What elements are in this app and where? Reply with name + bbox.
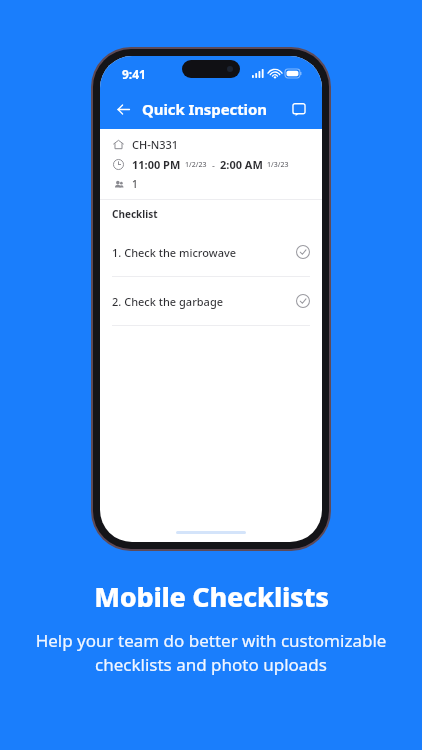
button[interactable]: Back: [110, 96, 136, 122]
staticText: 11:00 PM: [132, 157, 181, 172]
staticText: 1/3/23: [267, 160, 289, 170]
staticText: -: [212, 159, 215, 171]
staticText: 1/2/23: [185, 160, 207, 170]
button[interactable]: 2. Check the garbage: [100, 277, 322, 326]
button[interactable]: 1. Check the microwave: [100, 228, 322, 277]
staticText: Mobile Checklists: [94, 578, 329, 615]
staticText: Help your team do better with customizab…: [26, 629, 396, 676]
staticText: 1: [132, 177, 138, 191]
staticText: 9:41: [122, 66, 146, 82]
staticText: 2:00 AM: [220, 157, 263, 172]
button[interactable]: Messages: [286, 96, 312, 122]
staticText: 1. Check the microwave: [112, 245, 237, 260]
staticText: Checklist: [112, 207, 158, 221]
staticText: 2. Check the garbage: [112, 294, 224, 309]
staticText: CH-N331: [132, 137, 179, 152]
staticText: Quick Inspection: [142, 99, 267, 119]
